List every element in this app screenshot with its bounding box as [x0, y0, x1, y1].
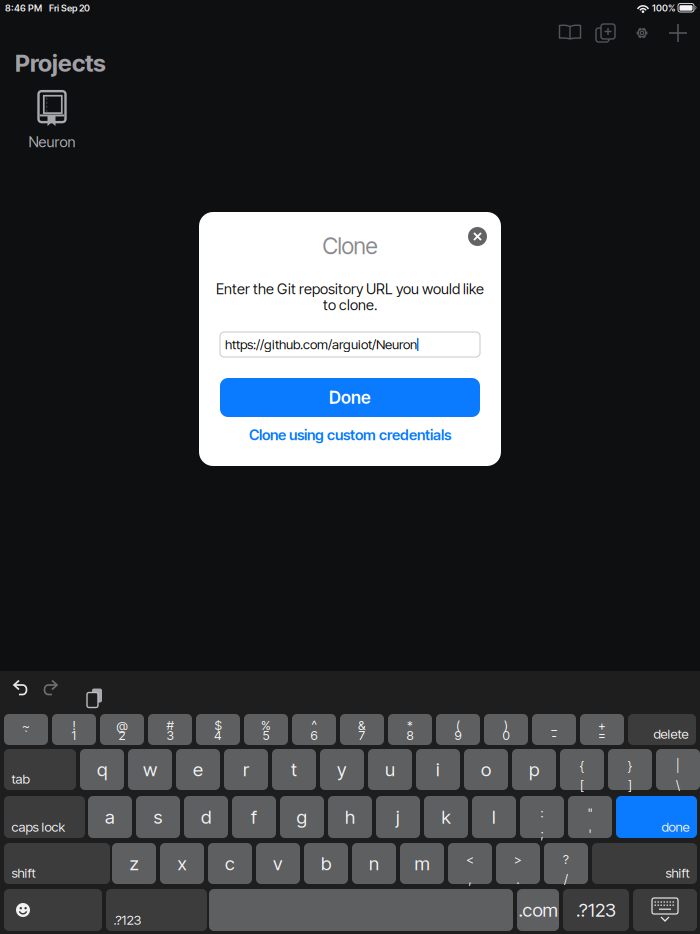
button[interactable]: caps lock	[4, 796, 85, 838]
staticText: 8:46 PM	[5, 2, 42, 14]
button[interactable]: ?	[544, 843, 588, 884]
button[interactable]: shift	[592, 843, 697, 884]
staticText: d	[201, 806, 211, 828]
button[interactable]: <	[448, 843, 492, 884]
staticText: l	[492, 806, 496, 828]
button[interactable]: New from template	[588, 20, 624, 46]
staticText: p	[529, 758, 539, 781]
button[interactable]: Neuron	[4, 90, 100, 152]
staticText: +	[598, 718, 606, 733]
button[interactable]: d	[184, 796, 228, 838]
staticText: `	[23, 728, 28, 743]
staticText: 7	[358, 728, 365, 743]
button[interactable]: Redo	[38, 676, 69, 706]
button[interactable]: .?123	[106, 889, 207, 931]
staticText: :	[540, 805, 543, 821]
button[interactable]: h	[328, 796, 372, 838]
staticText: 3	[166, 728, 173, 743]
button[interactable]: shift	[4, 843, 110, 884]
staticText: @	[116, 718, 127, 733]
staticText: caps lock	[11, 819, 65, 835]
button[interactable]: a	[88, 796, 132, 838]
button[interactable]: tab	[4, 749, 76, 790]
button[interactable]: w	[128, 749, 172, 790]
button[interactable]: *	[388, 714, 432, 745]
button[interactable]: j	[376, 796, 420, 838]
button[interactable]: >	[496, 843, 540, 884]
button[interactable]: g	[280, 796, 324, 838]
staticText: &	[358, 718, 366, 733]
staticText: 6	[310, 728, 317, 743]
button[interactable]: :	[520, 796, 564, 838]
staticText: =	[598, 728, 606, 743]
button[interactable]: Clone using custom credentials	[199, 425, 501, 445]
button[interactable]: Paste	[69, 676, 100, 706]
button[interactable]: delete	[628, 714, 696, 745]
staticText: Done	[329, 387, 371, 408]
button[interactable]: o	[464, 749, 508, 790]
button[interactable]: Done	[220, 378, 480, 417]
button[interactable]: y	[320, 749, 364, 790]
button[interactable]: z	[112, 843, 156, 884]
button[interactable]: @	[100, 714, 144, 745]
button[interactable]: &	[340, 714, 384, 745]
button[interactable]: |	[656, 749, 700, 790]
button[interactable]: "	[568, 796, 612, 838]
staticText: m	[414, 852, 429, 875]
button[interactable]: Close	[468, 227, 487, 246]
button[interactable]: p	[512, 749, 556, 790]
staticText: k	[441, 806, 450, 828]
staticText: !	[72, 718, 75, 733]
button[interactable]: (	[436, 714, 480, 745]
button[interactable]: s	[136, 796, 180, 838]
button[interactable]: e	[176, 749, 220, 790]
button[interactable]: i	[416, 749, 460, 790]
button[interactable]: r	[224, 749, 268, 790]
button[interactable]: x	[160, 843, 204, 884]
staticText: delete	[653, 726, 688, 742]
staticText: tab	[11, 771, 29, 787]
button[interactable]	[633, 889, 697, 931]
button[interactable]: !	[52, 714, 96, 745]
button[interactable]: v	[256, 843, 300, 884]
button[interactable]: +	[580, 714, 624, 745]
button[interactable]: q	[80, 749, 124, 790]
button[interactable]: Undo	[7, 676, 38, 706]
button[interactable]: b	[304, 843, 348, 884]
button[interactable]: .com	[517, 889, 559, 931]
button[interactable]: $	[196, 714, 240, 745]
button[interactable]: t	[272, 749, 316, 790]
button[interactable]: .?123	[563, 889, 629, 931]
button[interactable]: Settings	[624, 20, 660, 46]
button[interactable]: _	[532, 714, 576, 745]
button[interactable]: )	[484, 714, 528, 745]
button[interactable]: n	[352, 843, 396, 884]
staticText: shift	[11, 865, 35, 881]
staticText: t	[291, 758, 297, 781]
button[interactable]: f	[232, 796, 276, 838]
staticText: 9	[454, 728, 461, 743]
button[interactable]: done	[616, 796, 697, 838]
button[interactable]: Library	[552, 20, 588, 46]
button[interactable]: c	[208, 843, 252, 884]
button[interactable]: l	[472, 796, 516, 838]
staticText: >	[514, 852, 522, 867]
staticText: z	[129, 852, 138, 875]
staticText: .com	[518, 899, 557, 921]
staticText: |	[676, 758, 680, 773]
button[interactable]: ~	[4, 714, 48, 745]
button[interactable]: %	[244, 714, 288, 745]
staticText: r	[243, 758, 249, 781]
button[interactable]: u	[368, 749, 412, 790]
button[interactable]: ^	[292, 714, 336, 745]
staticText: b	[321, 852, 331, 875]
button[interactable]: Add	[660, 20, 696, 46]
button[interactable]: #	[148, 714, 192, 745]
button[interactable]: }	[608, 749, 652, 790]
staticText: }	[627, 758, 632, 773]
button[interactable]: {	[560, 749, 604, 790]
button[interactable]: m	[400, 843, 444, 884]
button[interactable]	[4, 889, 102, 931]
button[interactable]: k	[424, 796, 468, 838]
